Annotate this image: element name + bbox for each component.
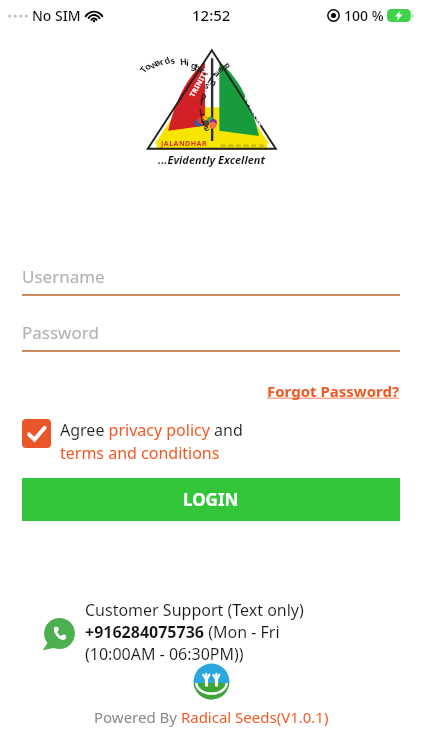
staticText: o — [200, 89, 208, 101]
staticText: No SIM — [32, 6, 81, 25]
staticText: TRINITY — [188, 67, 211, 99]
staticText: g — [190, 59, 198, 71]
staticText: r — [202, 67, 211, 80]
staticText: H — [180, 55, 187, 67]
staticText: i — [186, 56, 189, 68]
staticText: a — [151, 55, 163, 69]
button[interactable]: WhatsApp customer support — [42, 616, 77, 651]
staticText: Username — [22, 265, 105, 288]
staticText: r — [156, 54, 167, 67]
staticText: e — [200, 120, 212, 134]
staticText: h — [194, 60, 202, 73]
staticText: Agree privacy policy and terms and condi… — [60, 419, 243, 464]
staticText: T — [136, 63, 150, 75]
staticText: +916284075736 (Mon - Fri — [85, 621, 280, 643]
staticText: d — [162, 53, 172, 67]
staticText: JALANDHAR — [161, 139, 208, 149]
staticText: ...Evidently Excellent — [158, 152, 265, 167]
button[interactable]: LOGIN — [22, 478, 400, 521]
staticText: e — [215, 63, 228, 75]
staticText: f — [200, 95, 204, 107]
button[interactable]: Agree to privacy policy checkbox — [22, 419, 400, 464]
staticText: e — [198, 63, 208, 77]
button[interactable]: Powered By Radical Seeds(V1.0.1) — [0, 705, 422, 729]
staticText: Customer Support (Text only) — [85, 599, 304, 621]
staticText: l — [208, 70, 217, 82]
staticText: w — [146, 57, 160, 71]
staticText: Powered By Radical Seeds(V1.0.1) — [94, 707, 329, 727]
staticText: o — [140, 60, 153, 72]
staticText: Password — [22, 321, 99, 344]
staticText: COLLEGE — [241, 94, 267, 128]
button[interactable]: Password — [22, 314, 400, 350]
staticText: f — [199, 116, 207, 128]
staticText: Forgot Password? — [267, 381, 400, 401]
staticText: a — [212, 66, 224, 79]
staticText: L — [198, 105, 206, 117]
other: Agree to privacy policy checkbox — [22, 419, 51, 448]
staticText: LOGIN — [183, 488, 239, 511]
staticText: (10:00AM - 06:30PM)) — [85, 643, 244, 665]
staticText: s — [168, 53, 177, 66]
staticText: i — [198, 111, 205, 123]
staticText: s — [203, 78, 212, 91]
staticText: m — [206, 74, 219, 88]
button[interactable]: Username — [22, 258, 400, 294]
button[interactable]: Forgot Password? — [240, 379, 400, 403]
staticText: 100 % — [344, 6, 384, 25]
staticText: 12:52 — [192, 5, 231, 25]
staticText: R — [220, 60, 234, 72]
